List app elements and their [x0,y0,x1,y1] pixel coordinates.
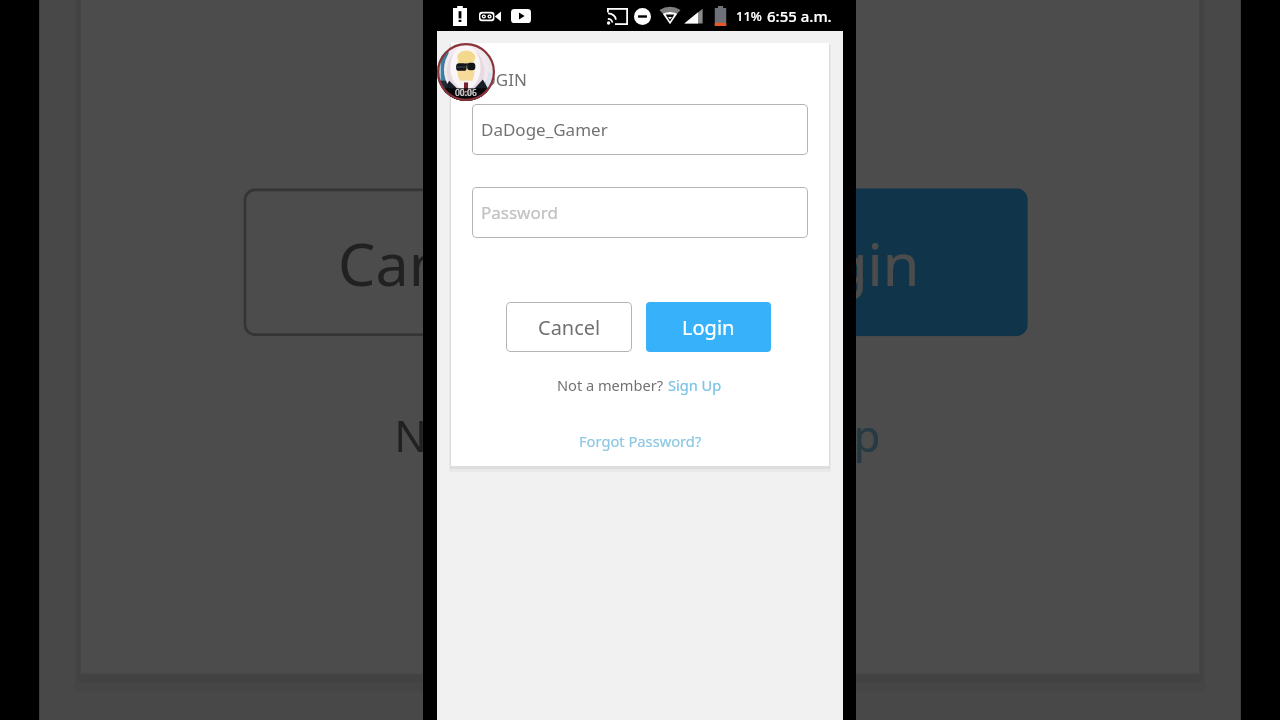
staticText: 00:06 [455,87,477,99]
staticText: Login [682,314,735,341]
button[interactable]: Cancel [506,302,632,352]
staticText: Not a member? [394,404,720,464]
staticText: Not a member? [557,375,667,395]
button[interactable]: Sign Up [720,398,886,469]
staticText: Cancel [338,224,525,304]
staticText: Forgot Password? [579,431,702,451]
button[interactable]: Login [658,188,1028,336]
staticText: 11% [736,7,762,25]
button[interactable]: Login [646,302,771,352]
button[interactable]: Sign Up [667,373,723,397]
button[interactable]: DaDoge_Gamer [472,104,808,155]
staticText: Sign Up [668,375,722,395]
other: Screen recording avatar [437,43,495,101]
staticText: Cancel [538,314,601,341]
button[interactable]: Forgot Password? [578,429,703,453]
staticText: 6:55 a.m. [767,6,832,26]
button[interactable]: Cancel [243,188,616,336]
staticText: DaDoge_Gamer [481,118,608,141]
staticText: Sign Up [723,404,883,464]
staticText: Login [764,224,921,304]
staticText: LOGIN [474,68,527,91]
button[interactable]: Password [472,187,808,238]
staticText: Password [481,201,558,224]
